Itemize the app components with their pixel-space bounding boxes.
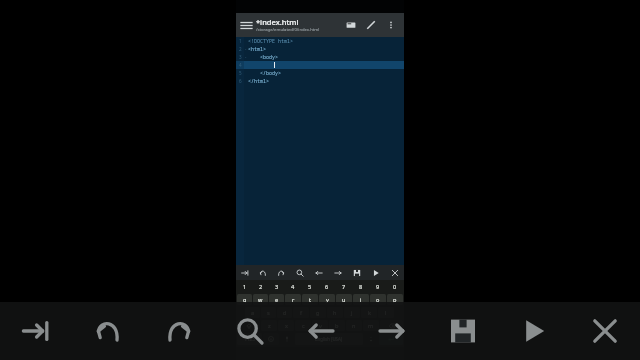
staticText: i <box>360 296 362 304</box>
button[interactable]: Close <box>385 265 404 280</box>
staticText: 6 <box>325 283 329 291</box>
staticText: v <box>319 322 322 330</box>
button[interactable]: i <box>353 294 369 305</box>
button[interactable]: Shift <box>237 320 260 331</box>
staticText: z <box>268 322 271 330</box>
staticText: n <box>352 322 356 330</box>
staticText: x <box>285 322 288 330</box>
button[interactable]: Left <box>309 265 328 280</box>
staticText: ?123 <box>245 336 255 342</box>
button[interactable]: 6 <box>319 282 335 292</box>
button[interactable]: v <box>312 320 328 331</box>
button[interactable]: More options <box>381 15 401 35</box>
button[interactable]: Backspace <box>380 320 403 331</box>
button[interactable]: Redo <box>272 265 290 280</box>
staticText: j <box>351 309 353 317</box>
button[interactable]: 0 <box>387 282 403 292</box>
button[interactable]: e <box>269 294 284 305</box>
button[interactable]: 7 <box>336 282 352 292</box>
button[interactable]: ?123 <box>237 333 262 345</box>
button[interactable]: Run <box>498 302 569 360</box>
button[interactable]: Right <box>328 265 347 280</box>
staticText: h <box>333 309 337 317</box>
staticText: 3 <box>239 54 242 60</box>
staticText: y <box>326 296 329 304</box>
staticText: q <box>243 296 247 304</box>
staticText: <body> <box>248 54 279 61</box>
button[interactable]: u <box>336 294 352 305</box>
button[interactable]: 5 <box>302 282 318 292</box>
staticText: f <box>300 309 302 317</box>
staticText: *index.html <box>256 17 299 27</box>
button[interactable]: Save <box>427 302 498 360</box>
button[interactable]: y <box>319 294 335 305</box>
button[interactable]: Tab <box>236 265 254 280</box>
button[interactable]: 3 <box>269 282 284 292</box>
button[interactable]: Right <box>356 302 427 360</box>
button[interactable]: m <box>363 320 379 331</box>
button[interactable]: Run <box>366 265 385 280</box>
staticText: g <box>316 309 320 317</box>
button[interactable]: w <box>253 294 268 305</box>
button[interactable]: Close <box>569 302 640 360</box>
staticText: English (USA) <box>315 336 343 342</box>
button[interactable]: 9 <box>370 282 386 292</box>
button[interactable]: English (USA) <box>295 333 363 345</box>
button[interactable]: r <box>285 294 301 305</box>
button[interactable]: Save <box>347 265 366 280</box>
staticText: <html> <box>248 46 267 53</box>
button[interactable]: Undo <box>254 265 272 280</box>
button[interactable]: Left <box>285 302 356 360</box>
button[interactable]: t <box>302 294 318 305</box>
staticText: 1 <box>239 38 242 44</box>
button[interactable]: 4 <box>285 282 301 292</box>
staticText: o <box>376 296 380 304</box>
button[interactable]: Save file <box>341 15 361 35</box>
button[interactable]: Search <box>214 302 285 360</box>
staticText: 4 <box>291 283 295 291</box>
button[interactable]: q <box>237 294 252 305</box>
button[interactable]: p <box>387 294 403 305</box>
button[interactable]: 1 <box>237 282 252 292</box>
staticText: d <box>283 309 287 317</box>
button[interactable]: Enter <box>379 333 403 345</box>
button[interactable]: Tab <box>0 302 72 360</box>
button[interactable]: Search <box>290 265 309 280</box>
staticText: - <box>245 54 247 60</box>
staticText: u <box>342 296 346 304</box>
staticText: s <box>267 309 270 317</box>
staticText: 4 <box>239 62 242 68</box>
button[interactable]: b <box>329 320 345 331</box>
button[interactable]: Emoji <box>263 333 279 345</box>
button[interactable]: o <box>370 294 386 305</box>
button[interactable]: 2 <box>253 282 268 292</box>
button[interactable]: Redo <box>143 302 214 360</box>
staticText: 1 <box>243 283 247 291</box>
staticText: - <box>245 46 247 52</box>
staticText: l <box>385 309 387 317</box>
staticText: a <box>251 309 255 317</box>
button[interactable]: c <box>295 320 311 331</box>
staticText: 2 <box>259 283 263 291</box>
staticText: b <box>335 322 339 330</box>
button[interactable]: Edit <box>361 15 381 35</box>
button[interactable]: Open navigation menu <box>236 15 256 35</box>
button[interactable]: 8 <box>353 282 369 292</box>
button[interactable]: Undo <box>72 302 143 360</box>
staticText: m <box>368 322 374 330</box>
